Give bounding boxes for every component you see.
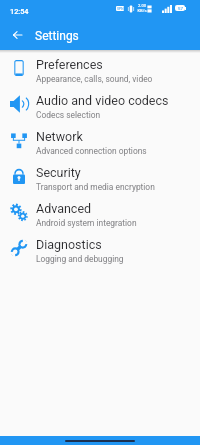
staticText: Audio and video codecs (36, 93, 169, 108)
staticText: VPN (117, 7, 124, 11)
staticText: Appearance, calls, sound, video (36, 74, 153, 84)
staticText: Preferences (36, 57, 103, 72)
button[interactable]: Network (0, 122, 200, 158)
staticText: Logging and debugging (36, 254, 124, 264)
staticText: 57 (178, 6, 183, 11)
button[interactable]: Security (0, 158, 200, 194)
staticText: 2.00 KB/s (137, 3, 147, 13)
button[interactable]: Advanced (0, 194, 200, 230)
staticText: Diagnostics (36, 237, 102, 252)
button[interactable]: Preferences (0, 50, 200, 86)
staticText: Android system integration (36, 218, 137, 228)
button[interactable]: Diagnostics (0, 230, 200, 266)
staticText: Transport and media encryption (36, 182, 155, 192)
button[interactable]: Audio and video codecs (0, 86, 200, 122)
button[interactable]: Home (65, 440, 135, 442)
staticText: Settings (35, 29, 79, 43)
staticText: Network (36, 129, 83, 144)
staticText: Codecs selection (36, 110, 101, 120)
staticText: Advanced (36, 201, 92, 216)
staticText: Advanced connection options (36, 146, 147, 156)
staticText: Security (36, 165, 81, 180)
button[interactable]: Navigate back (5, 24, 27, 46)
staticText: 12:54 (10, 7, 29, 16)
